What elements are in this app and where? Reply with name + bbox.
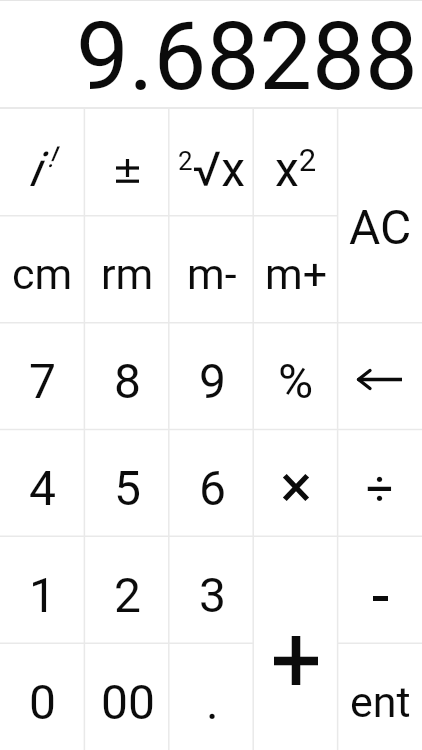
staticText: 00 <box>101 674 155 730</box>
staticText: . <box>206 674 219 730</box>
button[interactable]: . <box>170 643 254 750</box>
staticText: ent <box>350 677 411 727</box>
staticText: m+ <box>265 249 328 299</box>
staticText: 6 <box>199 460 226 516</box>
staticText: 0 <box>29 674 56 730</box>
button[interactable]: 2√x <box>170 109 254 215</box>
button[interactable]: cm <box>0 215 85 322</box>
button[interactable]: 3 <box>170 536 254 643</box>
button[interactable]: 0 <box>0 643 85 750</box>
button[interactable] <box>338 536 422 643</box>
button[interactable] <box>338 322 422 429</box>
button[interactable]: 00 <box>85 643 170 750</box>
staticText: AC <box>349 199 412 255</box>
button[interactable]: 5 <box>85 429 170 536</box>
button[interactable]: x2 <box>254 109 338 215</box>
button[interactable] <box>254 429 338 536</box>
button[interactable]: AC <box>338 109 422 322</box>
staticText: 2√x <box>178 141 246 197</box>
staticText: x2 <box>275 141 317 197</box>
button[interactable]: ent <box>338 643 422 750</box>
staticText: 5 <box>114 460 141 516</box>
staticText: 9 <box>199 353 226 409</box>
staticText: m- <box>187 249 237 299</box>
button[interactable]: rm <box>85 215 170 322</box>
staticText: ÷ <box>366 460 394 516</box>
button[interactable]: m+ <box>254 215 338 322</box>
button[interactable]: 2 <box>85 536 170 643</box>
button[interactable]: 9.68288 <box>0 0 422 107</box>
button[interactable]: 7 <box>0 322 85 429</box>
button[interactable] <box>85 109 170 215</box>
button[interactable]: 1 <box>0 536 85 643</box>
staticText: cm <box>12 249 73 299</box>
button[interactable]: 6 <box>170 429 254 536</box>
staticText: 7 <box>29 353 56 409</box>
staticText: i ! <box>29 140 56 198</box>
staticText: % <box>278 353 314 409</box>
button[interactable]: 8 <box>85 322 170 429</box>
staticText: rm <box>101 249 154 299</box>
button[interactable]: 9 <box>170 322 254 429</box>
button[interactable]: i ! <box>0 109 85 215</box>
staticText: 4 <box>29 460 56 516</box>
button[interactable]: m- <box>170 215 254 322</box>
staticText: 8 <box>114 353 141 409</box>
button[interactable] <box>254 536 338 750</box>
staticText: 3 <box>199 567 226 623</box>
staticText: 2 <box>114 567 141 623</box>
button[interactable]: % <box>254 322 338 429</box>
button[interactable]: 4 <box>0 429 85 536</box>
staticText: 9.68288 <box>76 2 418 109</box>
button[interactable]: ÷ <box>338 429 422 536</box>
staticText: 1 <box>29 567 56 623</box>
